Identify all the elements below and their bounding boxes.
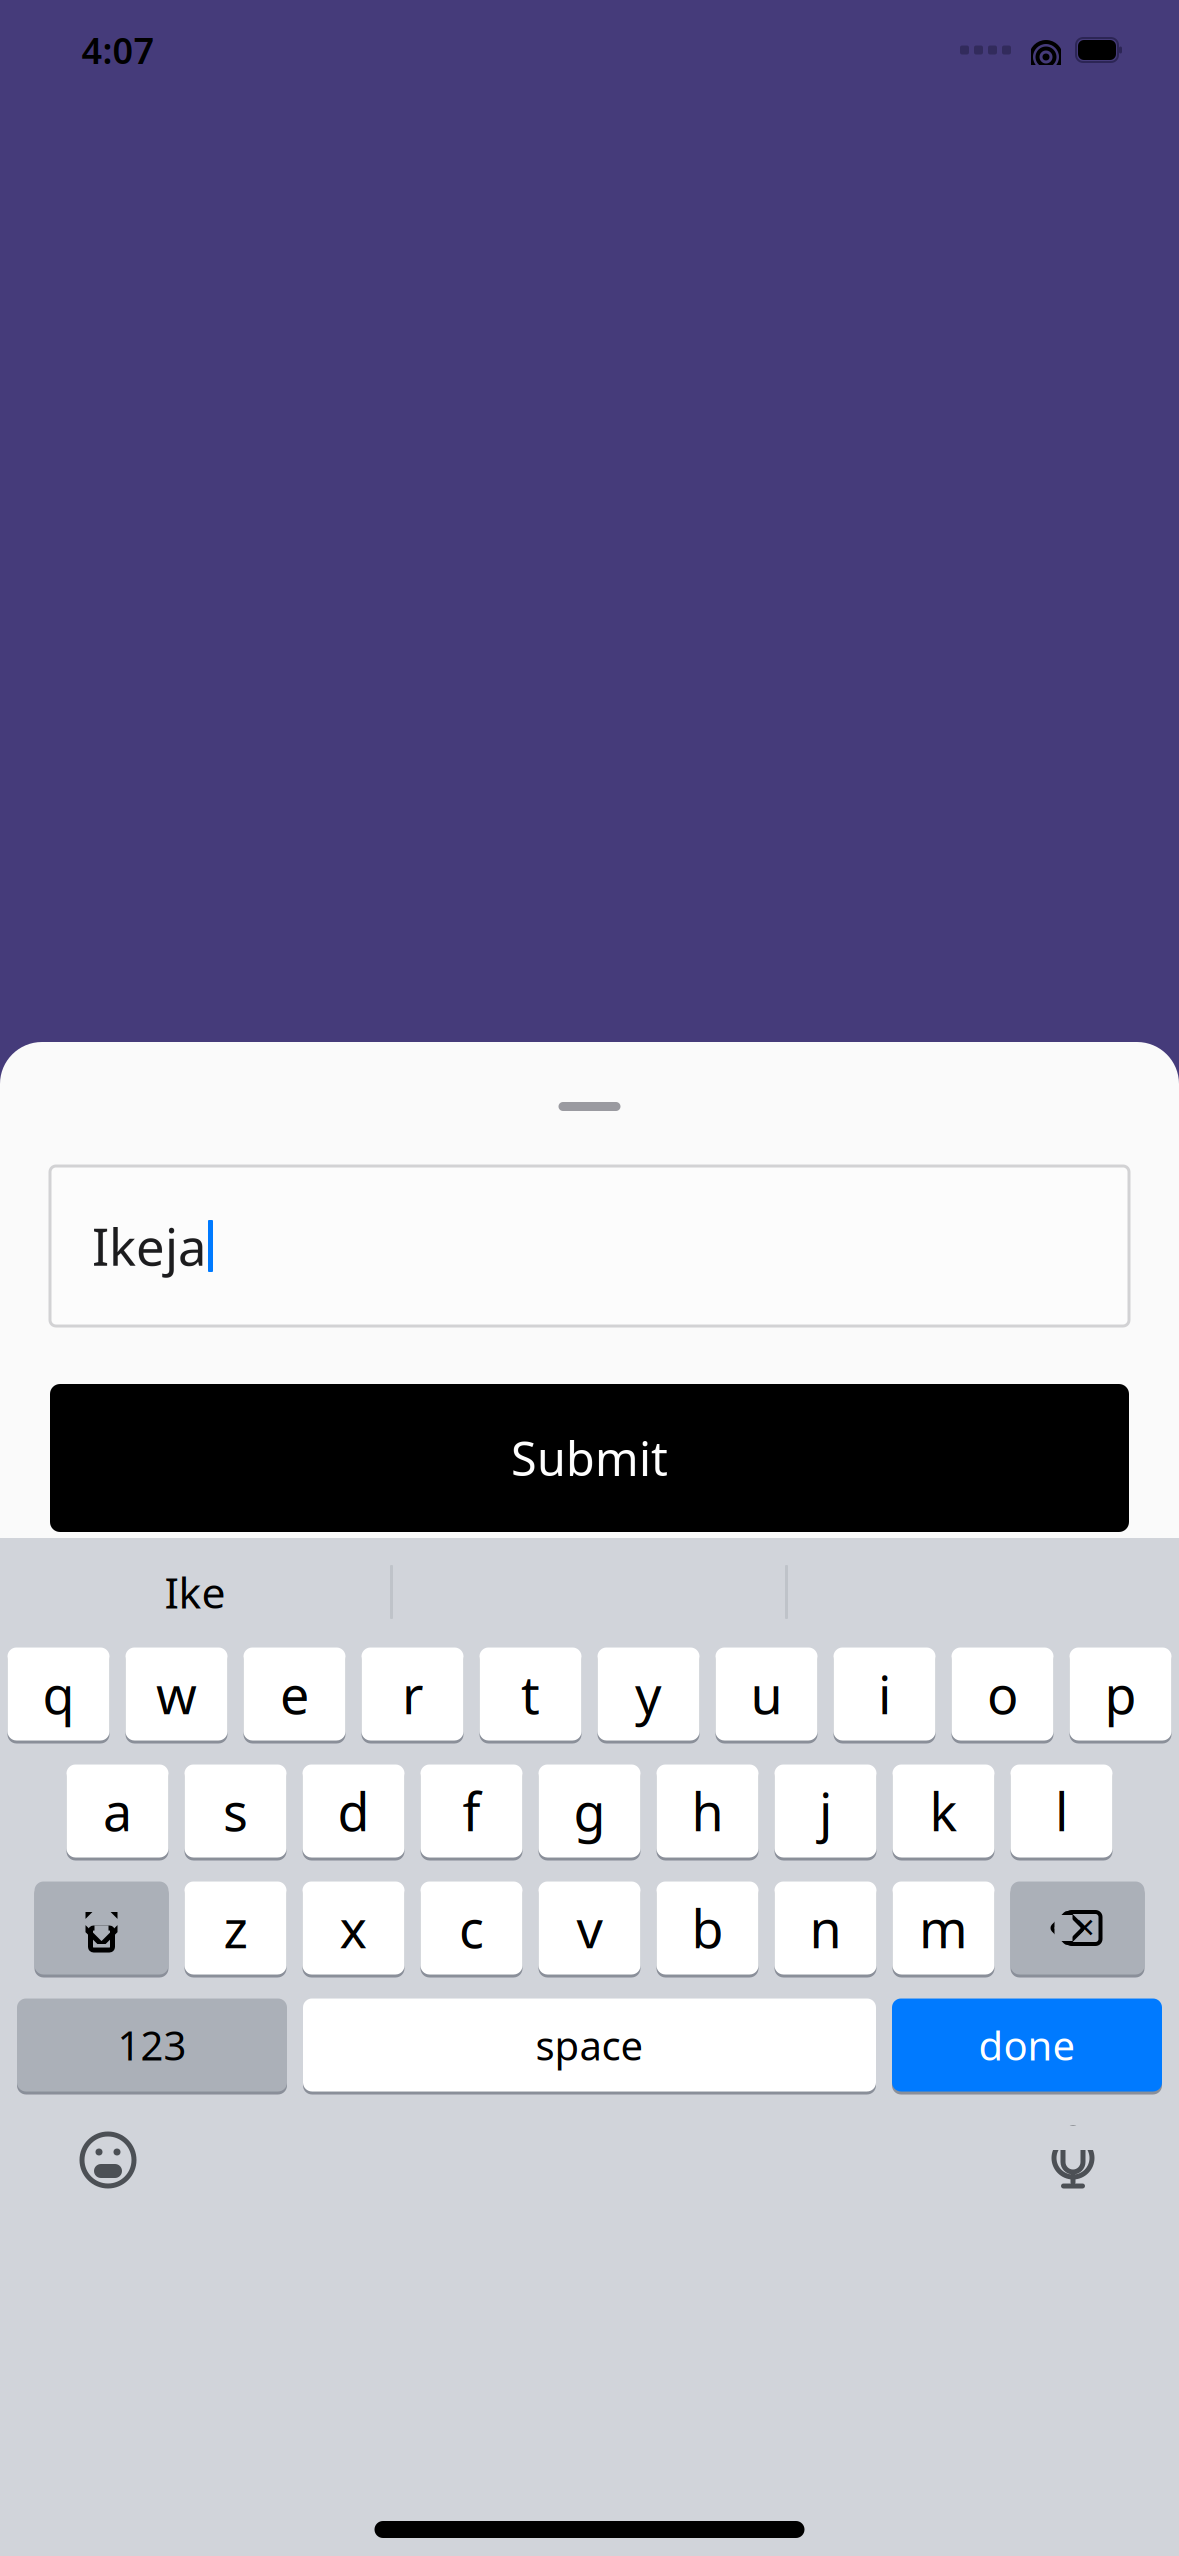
button[interactable]: r [361, 1646, 463, 1742]
button[interactable]: Submit [50, 1384, 1129, 1532]
staticText: Submit [511, 1427, 668, 1489]
button[interactable]: v [538, 1880, 640, 1976]
button[interactable]: j [774, 1763, 876, 1859]
button[interactable]: Delete [1010, 1880, 1144, 1976]
button[interactable]: l [1010, 1763, 1112, 1859]
staticText: i [878, 1659, 891, 1729]
button[interactable]: o [951, 1646, 1053, 1742]
staticText: h [691, 1776, 723, 1846]
button[interactable]: c [420, 1880, 522, 1976]
staticText: f [462, 1776, 480, 1846]
button[interactable]: x [302, 1880, 404, 1976]
button[interactable]: Ikeja [50, 1166, 1129, 1326]
staticText: ✕ [1073, 1913, 1095, 1943]
staticText: n [809, 1893, 841, 1963]
button[interactable]: g [538, 1763, 640, 1859]
button[interactable]: b [656, 1880, 758, 1976]
staticText: o [987, 1659, 1018, 1729]
button[interactable]: u [715, 1646, 817, 1742]
staticText: done [978, 2018, 1075, 2071]
button[interactable]: Emoji [78, 2130, 138, 2190]
button[interactable]: m [892, 1880, 994, 1976]
staticText: d [337, 1776, 369, 1846]
staticText: q [42, 1659, 74, 1729]
staticText: k [929, 1776, 957, 1846]
button[interactable]: d [302, 1763, 404, 1859]
button[interactable]: Shift [34, 1880, 168, 1976]
button[interactable]: f [420, 1763, 522, 1859]
button[interactable]: done [892, 1997, 1162, 2093]
staticText: b [691, 1893, 723, 1963]
staticText: Ikeja [92, 1212, 206, 1280]
staticText: j [819, 1776, 832, 1846]
staticText: t [521, 1659, 540, 1729]
staticText: v [576, 1893, 602, 1963]
button[interactable]: Dictation [1045, 2127, 1101, 2193]
button[interactable]: w [125, 1646, 227, 1742]
staticText: 123 [117, 2018, 186, 2071]
button[interactable]: 123 [17, 1997, 287, 2093]
staticText: space [535, 2018, 643, 2071]
staticText: g [573, 1776, 605, 1846]
staticText: x [339, 1893, 367, 1963]
staticText: w [156, 1659, 197, 1729]
button[interactable]: s [184, 1763, 286, 1859]
staticText: y [635, 1659, 662, 1729]
button[interactable]: p [1069, 1646, 1171, 1742]
staticText: Ike [164, 1564, 225, 1620]
staticText: s [223, 1776, 248, 1846]
staticText: 4:07 [81, 26, 154, 74]
button[interactable]: q [7, 1646, 109, 1742]
button[interactable]: n [774, 1880, 876, 1976]
staticText: l [1055, 1776, 1068, 1846]
staticText: m [919, 1893, 968, 1963]
staticText: e [280, 1659, 309, 1729]
button[interactable]: y [597, 1646, 699, 1742]
button[interactable]: k [892, 1763, 994, 1859]
staticText: u [750, 1659, 782, 1729]
button[interactable]: z [184, 1880, 286, 1976]
staticText: p [1104, 1659, 1136, 1729]
button[interactable]: space [303, 1997, 876, 2093]
staticText: r [402, 1659, 423, 1729]
button[interactable]: a [66, 1763, 168, 1859]
staticText: z [223, 1893, 247, 1963]
button[interactable]: t [479, 1646, 581, 1742]
staticText: a [103, 1776, 132, 1846]
button[interactable]: h [656, 1763, 758, 1859]
staticText: c [459, 1893, 484, 1963]
button[interactable]: i [833, 1646, 935, 1742]
button[interactable]: e [243, 1646, 345, 1742]
button[interactable]: Ike [0, 1544, 390, 1640]
